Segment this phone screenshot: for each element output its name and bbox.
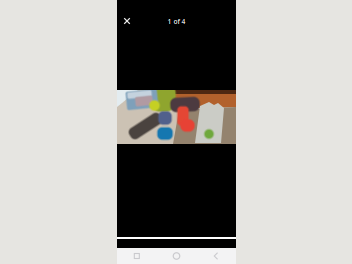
button[interactable]: Back (209, 249, 223, 262)
staticText: 1 of 4 (167, 17, 185, 26)
button[interactable]: Recents (130, 249, 144, 262)
button[interactable]: Close (120, 14, 134, 28)
button[interactable]: Home (169, 249, 183, 262)
